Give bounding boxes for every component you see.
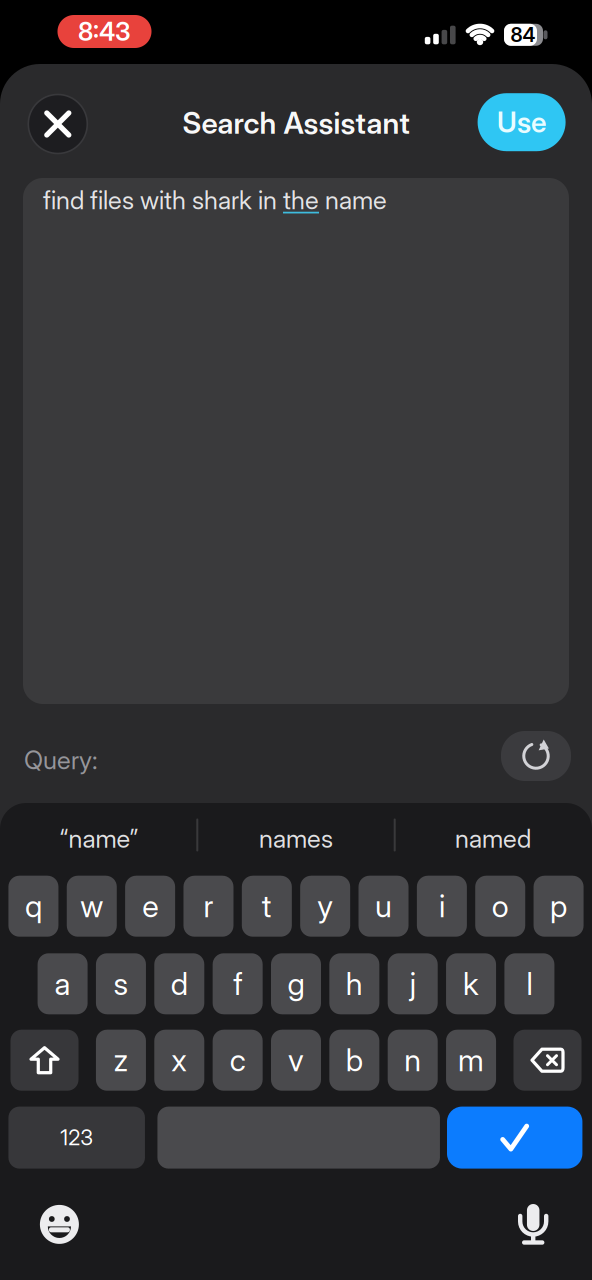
button[interactable]: v [271, 1030, 321, 1091]
staticText: z [113, 1042, 128, 1078]
button[interactable]: q [8, 876, 58, 937]
staticText: c [230, 1042, 246, 1078]
staticText: u [375, 888, 392, 924]
button[interactable]: j [388, 953, 438, 1014]
staticText: named [455, 824, 531, 853]
staticText: “name” [59, 824, 138, 853]
staticText: h [346, 966, 363, 1002]
button[interactable]: d [154, 953, 204, 1014]
button[interactable]: Dictate [516, 1204, 550, 1250]
button[interactable]: 123 [8, 1107, 145, 1169]
button[interactable]: s [96, 953, 146, 1014]
staticText: n [404, 1042, 421, 1078]
button[interactable]: Delete [513, 1030, 581, 1091]
button[interactable]: n [388, 1030, 438, 1091]
staticText: p [550, 888, 567, 924]
button[interactable]: h [329, 953, 379, 1014]
staticText: b [346, 1042, 363, 1078]
button[interactable]: Use [478, 93, 566, 151]
staticText: y [317, 888, 333, 924]
staticText: 123 [60, 1125, 93, 1150]
button[interactable]: Prompt text [23, 178, 569, 704]
button[interactable]: Close [28, 94, 87, 153]
staticText: d [171, 966, 188, 1002]
staticText: k [463, 966, 479, 1002]
staticText: Query: [24, 745, 98, 775]
button[interactable]: m [446, 1030, 496, 1091]
button[interactable]: f [213, 953, 263, 1014]
staticText: o [492, 888, 509, 924]
button[interactable]: names [201, 810, 391, 866]
button[interactable]: Emoji [39, 1204, 79, 1244]
button[interactable]: Space [157, 1107, 440, 1169]
button[interactable]: b [329, 1030, 379, 1091]
button[interactable]: r [183, 876, 233, 937]
button[interactable]: g [271, 953, 321, 1014]
staticText: Use [497, 106, 546, 139]
button[interactable]: Return to recording [57, 15, 151, 48]
staticText: j [410, 966, 416, 1002]
button[interactable]: p [534, 876, 584, 937]
button[interactable]: c [213, 1030, 263, 1091]
button[interactable]: “name” [4, 810, 194, 866]
staticText: find files with shark in the name [43, 185, 387, 215]
staticText: w [80, 888, 103, 924]
staticText: 84 [510, 23, 535, 47]
button[interactable]: i [417, 876, 467, 937]
button[interactable]: o [475, 876, 525, 937]
staticText: v [288, 1042, 304, 1078]
staticText: names [259, 824, 333, 853]
button[interactable]: x [154, 1030, 204, 1091]
staticText: f [233, 966, 242, 1002]
staticText: t [262, 888, 272, 924]
staticText: e [142, 888, 158, 924]
button[interactable]: Done [447, 1107, 582, 1169]
button[interactable]: Shift [10, 1030, 78, 1091]
button[interactable]: t [242, 876, 292, 937]
staticText: Search Assistant [182, 106, 409, 140]
staticText: r [203, 888, 213, 924]
staticText: 8:43 [78, 17, 131, 46]
staticText: q [25, 888, 42, 924]
button[interactable]: k [446, 953, 496, 1014]
staticText: a [55, 966, 71, 1002]
button[interactable]: w [67, 876, 117, 937]
staticText: x [171, 1042, 187, 1078]
button[interactable]: u [358, 876, 408, 937]
button[interactable]: a [38, 953, 88, 1014]
staticText: i [439, 888, 445, 924]
button[interactable]: e [125, 876, 175, 937]
button[interactable]: named [398, 810, 588, 866]
staticText: s [113, 966, 128, 1002]
staticText: m [458, 1042, 484, 1078]
staticText: l [526, 966, 532, 1002]
button[interactable]: y [300, 876, 350, 937]
staticText: g [287, 966, 304, 1002]
button[interactable]: l [504, 953, 554, 1014]
button[interactable]: Regenerate query [501, 731, 571, 781]
button[interactable]: z [96, 1030, 146, 1091]
